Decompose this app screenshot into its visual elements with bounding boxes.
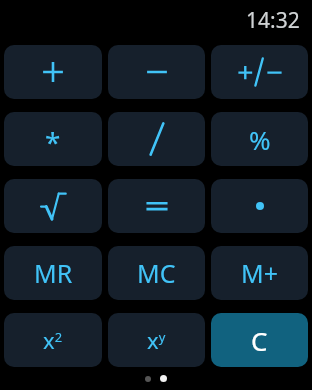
button[interactable]: Multiply [4, 112, 102, 166]
button[interactable]: Clear [211, 313, 308, 367]
staticText: xy [147, 325, 166, 355]
button[interactable]: x to the power of y [108, 313, 205, 367]
button[interactable]: Decimal point [211, 179, 308, 233]
staticText: MC [137, 256, 176, 290]
staticText: C [251, 323, 268, 358]
staticText: x2 [43, 325, 63, 355]
button[interactable]: Equals [108, 179, 205, 233]
button[interactable]: Memory add [211, 246, 308, 300]
button[interactable]: Plus [4, 45, 102, 99]
button[interactable]: Plus minus sign [211, 45, 308, 99]
staticText: % [249, 122, 271, 157]
button[interactable]: Minus [108, 45, 205, 99]
button[interactable]: Memory clear [108, 246, 205, 300]
staticText: * [45, 123, 61, 161]
staticText: 14:32 [246, 6, 300, 35]
button[interactable]: Percent [211, 112, 308, 166]
staticText: MR [34, 256, 73, 290]
button[interactable]: x squared [4, 313, 102, 367]
button[interactable]: Square root [4, 179, 102, 233]
staticText: M+ [241, 256, 278, 290]
button[interactable]: Divide [108, 112, 205, 166]
button[interactable]: Memory recall [4, 246, 102, 300]
